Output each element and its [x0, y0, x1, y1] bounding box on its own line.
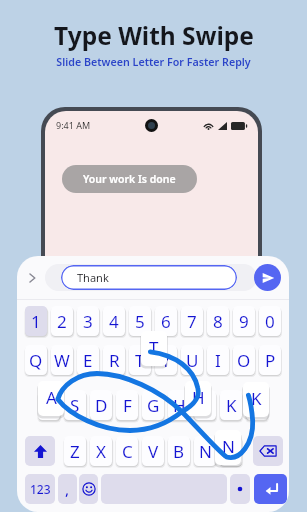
staticText: 123: [30, 481, 51, 497]
staticText: A: [46, 386, 57, 409]
staticText: 7: [187, 310, 197, 333]
staticText: D: [95, 394, 108, 417]
button[interactable]: E: [77, 345, 99, 375]
staticText: H: [192, 386, 205, 409]
staticText: Z: [70, 440, 80, 463]
button[interactable]: U: [181, 345, 203, 375]
button[interactable]: Z: [64, 436, 86, 466]
button[interactable]: ,: [58, 474, 77, 504]
staticText: Slide Between Letter For Faster Reply: [56, 55, 251, 70]
button[interactable]: 5: [129, 306, 151, 336]
staticText: Q: [29, 349, 43, 372]
button[interactable]: P: [259, 345, 281, 375]
staticText: K: [251, 387, 262, 410]
button[interactable]: 7: [181, 306, 203, 336]
button[interactable]: X: [90, 436, 112, 466]
staticText: I: [215, 349, 221, 372]
button[interactable]: A: [38, 390, 60, 420]
staticText: N: [199, 440, 212, 463]
button[interactable]: Send: [254, 264, 281, 291]
staticText: Thank: [77, 270, 109, 285]
staticText: 6: [161, 310, 171, 333]
button[interactable]: M: [220, 436, 242, 466]
staticText: Your work Is done: [83, 172, 176, 186]
button[interactable]: V: [142, 436, 164, 466]
staticText: W: [54, 349, 70, 372]
staticText: 1: [31, 310, 41, 333]
staticText: 9: [239, 310, 249, 333]
staticText: A: [44, 394, 55, 417]
button[interactable]: 0: [259, 306, 281, 336]
button[interactable]: O: [233, 345, 255, 375]
staticText: L: [253, 394, 262, 417]
button[interactable]: Enter: [254, 474, 287, 504]
button[interactable]: 3: [77, 306, 99, 336]
button[interactable]: H: [168, 390, 190, 420]
staticText: 3: [83, 310, 93, 333]
staticText: R: [109, 349, 120, 372]
button[interactable]: B: [168, 436, 190, 466]
button[interactable]: Period: [230, 474, 250, 504]
staticText: P: [265, 349, 276, 372]
button[interactable]: Backspace: [253, 436, 283, 466]
staticText: 2: [57, 310, 67, 333]
staticText: 5: [135, 310, 145, 333]
staticText: 0: [265, 310, 275, 333]
staticText: U: [186, 349, 199, 372]
button[interactable]: 4: [103, 306, 125, 336]
button[interactable]: Thank: [61, 265, 237, 290]
button[interactable]: T: [141, 331, 167, 366]
button[interactable]: L: [246, 390, 268, 420]
staticText: X: [96, 440, 106, 463]
staticText: K: [226, 394, 237, 417]
button[interactable]: Q: [25, 345, 47, 375]
button[interactable]: J: [194, 390, 216, 420]
staticText: T: [149, 336, 159, 359]
staticText: N: [222, 435, 235, 458]
staticText: J: [203, 394, 208, 417]
button[interactable]: Y: [155, 345, 177, 375]
staticText: M: [223, 440, 239, 463]
staticText: G: [147, 394, 160, 417]
button[interactable]: 2: [51, 306, 73, 336]
button[interactable]: C: [116, 436, 138, 466]
button[interactable]: G: [142, 390, 164, 420]
staticText: Y: [161, 349, 171, 372]
button[interactable]: I: [207, 345, 229, 375]
button[interactable]: 9: [233, 306, 255, 336]
button[interactable]: S: [64, 390, 86, 420]
staticText: F: [123, 394, 132, 417]
staticText: H: [173, 394, 186, 417]
staticText: 8: [213, 310, 223, 333]
button[interactable]: 6: [155, 306, 177, 336]
staticText: T: [135, 349, 145, 372]
button[interactable]: Emoji: [79, 474, 98, 504]
button[interactable]: D: [90, 390, 112, 420]
button[interactable]: K: [220, 390, 242, 420]
button[interactable]: N: [194, 436, 216, 466]
staticText: Type With Swipe: [54, 19, 254, 52]
staticText: ,: [65, 479, 70, 499]
staticText: V: [148, 440, 159, 463]
button[interactable]: K: [243, 382, 269, 417]
button[interactable]: F: [116, 390, 138, 420]
staticText: 4: [109, 310, 119, 333]
button[interactable]: T: [129, 345, 151, 375]
button[interactable]: More suggestions: [21, 267, 43, 289]
staticText: 9:41 AM: [56, 119, 91, 131]
button[interactable]: N: [215, 430, 241, 465]
button[interactable]: R: [103, 345, 125, 375]
staticText: E: [83, 349, 93, 372]
button[interactable]: 1: [25, 306, 47, 336]
staticText: S: [70, 394, 80, 417]
staticText: B: [173, 440, 185, 463]
button[interactable]: Shift: [25, 436, 55, 466]
button[interactable]: 123: [25, 474, 55, 504]
button[interactable]: 8: [207, 306, 229, 336]
button[interactable]: A: [38, 381, 64, 416]
button[interactable]: H: [185, 381, 211, 416]
staticText: O: [237, 349, 251, 372]
button[interactable]: W: [51, 345, 73, 375]
staticText: C: [122, 440, 133, 463]
